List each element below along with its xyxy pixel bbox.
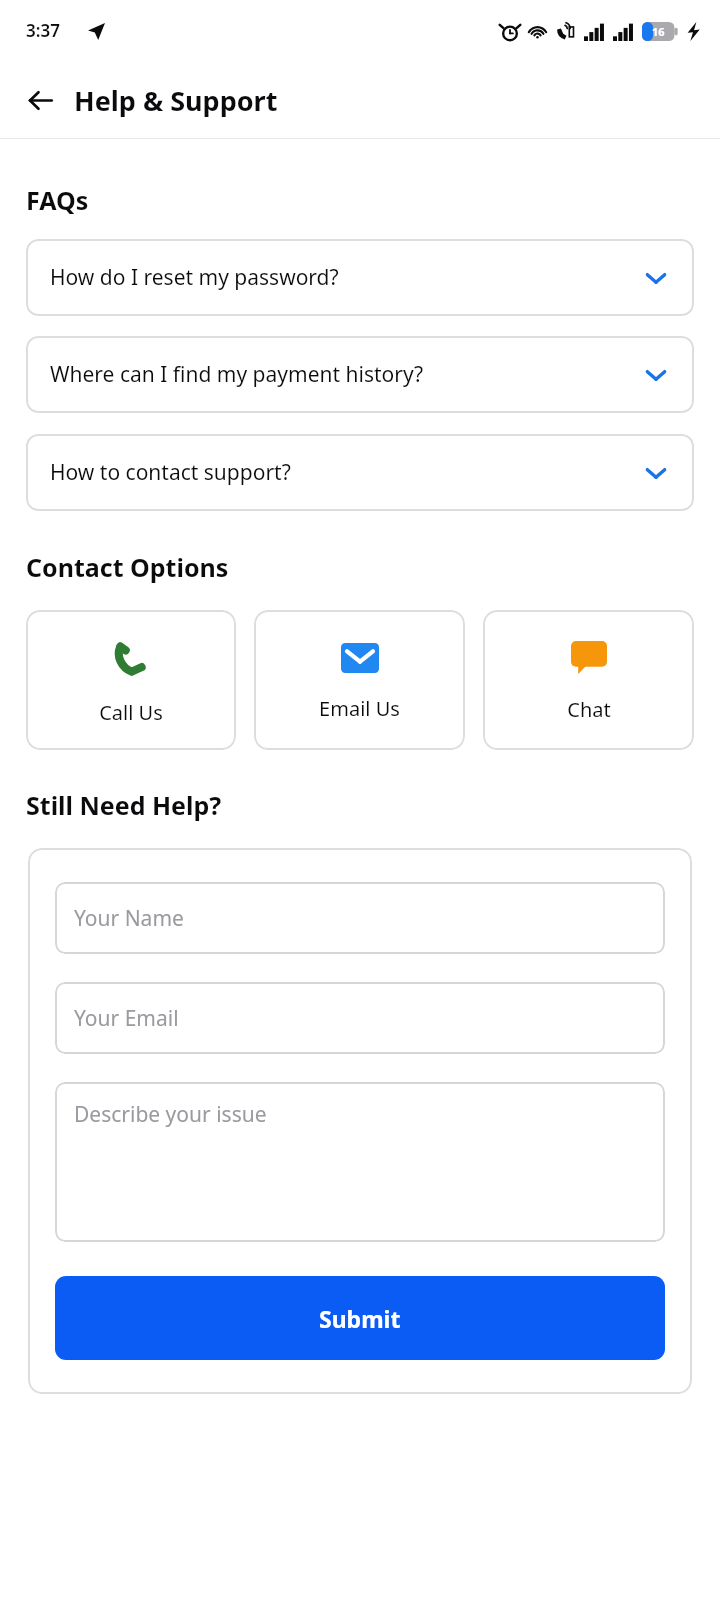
staticText: Chat	[567, 696, 611, 723]
staticText: 3:37	[26, 19, 60, 42]
staticText: Still Need Help?	[26, 788, 222, 822]
button[interactable]: How do I reset my password?	[26, 239, 694, 316]
staticText: Your Name	[74, 904, 184, 933]
staticText: 16	[652, 24, 665, 39]
staticText: Call Us	[99, 699, 163, 726]
staticText: Email Us	[319, 695, 400, 722]
button[interactable]: Chat	[483, 610, 694, 750]
button[interactable]: Email Us	[254, 610, 465, 750]
staticText: Your Email	[74, 1004, 179, 1033]
staticText: How to contact support?	[50, 458, 644, 487]
button[interactable]: Describe your issue	[55, 1082, 665, 1242]
button[interactable]: Back	[18, 78, 62, 122]
staticText: FAQs	[26, 183, 89, 217]
staticText: Where can I find my payment history?	[50, 360, 644, 389]
button[interactable]: How to contact support?	[26, 434, 694, 511]
button[interactable]: Call Us	[26, 610, 236, 750]
button[interactable]: Your Name	[55, 882, 665, 954]
button[interactable]: Submit	[55, 1276, 665, 1360]
button[interactable]: Where can I find my payment history?	[26, 336, 694, 413]
staticText: Describe your issue	[74, 1100, 267, 1129]
staticText: Help & Support	[74, 82, 278, 119]
staticText: How do I reset my password?	[50, 263, 644, 292]
staticText: Submit	[319, 1303, 401, 1334]
staticText: Contact Options	[26, 550, 229, 584]
button[interactable]: Your Email	[55, 982, 665, 1054]
